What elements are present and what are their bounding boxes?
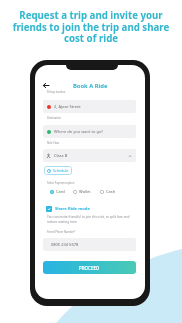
staticText: Cash (106, 189, 116, 194)
button[interactable]: 2, Ajose Street (43, 100, 136, 113)
staticText: 0805 234 5678 (51, 242, 79, 247)
staticText: Select Payment option (47, 181, 75, 185)
staticText: Where do you want to go? (54, 129, 104, 134)
staticText: Card (56, 189, 65, 194)
button[interactable]: 0805 234 5678 (43, 238, 136, 251)
staticText: 2, Ajose Street (54, 104, 81, 109)
button[interactable]: PROCEED (43, 261, 136, 274)
button[interactable]: Where do you want to go? (43, 125, 136, 138)
staticText: Share Ride mode (55, 206, 90, 212)
button[interactable]: Class B (43, 149, 136, 162)
button[interactable]: Card (50, 189, 65, 194)
staticText: Ride Class (47, 141, 60, 145)
staticText: Wallet (79, 189, 91, 194)
staticText: PROCEED (79, 265, 100, 271)
staticText: You can invite friend(s) to join this ri… (47, 215, 140, 224)
button[interactable]: Wallet (73, 189, 91, 194)
staticText: Friend Phone Number* (47, 230, 76, 234)
button[interactable]: Cash (100, 189, 116, 194)
staticText: Destination (47, 116, 62, 120)
staticText: Schedule (53, 168, 69, 173)
button[interactable]: Back (43, 83, 49, 88)
button[interactable]: Share Ride mode (46, 206, 90, 212)
button[interactable]: Schedule (44, 166, 72, 175)
staticText: Book A Ride (73, 82, 108, 90)
staticText: Class B (54, 153, 68, 158)
staticText: Pickup location (47, 90, 66, 94)
staticText: Request a trip and invite your friends t… (4, 9, 178, 45)
